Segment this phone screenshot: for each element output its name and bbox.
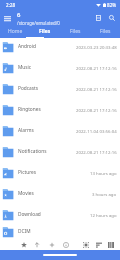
button[interactable]: Files [60, 26, 90, 38]
button[interactable]: Files [90, 26, 120, 38]
button[interactable]: View mode [91, 11, 105, 25]
button[interactable]: Ringtones [0, 99, 120, 120]
staticText: 2022-08-21 17:12:16 [76, 149, 117, 155]
button[interactable]: Menu [0, 11, 14, 25]
button[interactable]: Pictures [0, 162, 120, 183]
button[interactable]: Home [0, 26, 30, 38]
staticText: Music [18, 64, 32, 71]
staticText: 12 hours ago [90, 212, 117, 218]
button[interactable]: Grid view [106, 240, 116, 250]
staticText: Pictures [18, 169, 37, 176]
button[interactable]: Files [30, 26, 60, 38]
staticText: DCIM [18, 228, 31, 235]
staticText: Download [18, 211, 41, 218]
staticText: Notifications [18, 148, 47, 155]
staticText: 2022-08-21 17:12:16 [76, 65, 117, 71]
staticText: Movies [18, 190, 34, 197]
button[interactable]: Favorite [19, 240, 29, 250]
button[interactable]: Add [47, 240, 57, 250]
staticText: 2022-11-04 03:56:04 [76, 128, 117, 134]
button[interactable]: Movies [0, 183, 120, 204]
staticText: Android [18, 43, 36, 50]
staticText: 2023-03-23 20:33:48 [76, 44, 117, 50]
staticText: 2:28 [6, 2, 16, 8]
button[interactable]: Up one level [32, 240, 42, 250]
button[interactable]: Music [0, 57, 120, 78]
staticText: 2022-08-21 17:12:16 [76, 86, 117, 92]
button[interactable]: DCIM [0, 225, 120, 238]
button[interactable]: Select all [81, 240, 91, 250]
staticText: /storage/emulated/0 [17, 20, 60, 26]
staticText: Files [39, 28, 51, 35]
staticText: Podcasts [18, 85, 39, 92]
button[interactable]: Podcasts [0, 78, 120, 99]
button[interactable]: Android [0, 38, 120, 57]
button[interactable]: Search [105, 11, 119, 25]
staticText: 13 hours ago [90, 170, 117, 176]
staticText: Alarms [18, 127, 34, 134]
staticText: 3 hours ago [92, 191, 117, 197]
button[interactable]: Alarms [0, 120, 120, 141]
button[interactable]: Notifications [0, 141, 120, 162]
staticText: 2022-08-21 17:12:16 [76, 107, 117, 113]
staticText: Files [70, 28, 81, 35]
staticText: Files [100, 28, 111, 35]
staticText: Ringtones [18, 106, 41, 113]
staticText: 6 [17, 11, 21, 19]
button[interactable]: Download [0, 204, 120, 225]
staticText: Home [8, 28, 23, 35]
staticText: 82% [107, 2, 117, 8]
button[interactable]: Sort [94, 240, 104, 250]
button[interactable]: Properties [61, 240, 71, 250]
